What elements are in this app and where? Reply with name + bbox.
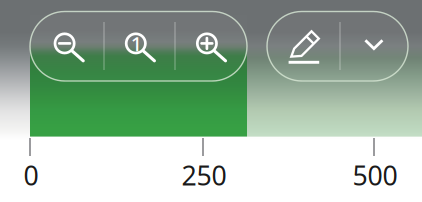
- button[interactable]: Markup: [0, 0, 422, 202]
- staticText: 500: [352, 157, 397, 193]
- button[interactable]: Zoom out: [0, 0, 422, 202]
- staticText: 0: [23, 157, 38, 193]
- button[interactable]: Actual size: [0, 0, 422, 202]
- button[interactable]: Hide toolbar: [0, 0, 422, 202]
- button[interactable]: Zoom in: [0, 0, 422, 202]
- staticText: 250: [181, 157, 226, 193]
- staticText: 1: [131, 30, 142, 57]
